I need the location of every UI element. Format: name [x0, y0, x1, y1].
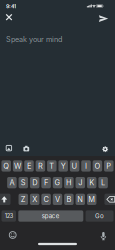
staticText: Go: [95, 212, 104, 220]
button[interactable]: A: [7, 177, 17, 188]
button[interactable]: M: [87, 194, 96, 205]
staticText: G: [54, 178, 60, 187]
staticText: R: [38, 161, 43, 170]
button[interactable]: Close: [4, 12, 14, 22]
button[interactable]: Emoji: [8, 230, 18, 240]
staticText: V: [55, 195, 60, 204]
button[interactable]: F: [41, 177, 51, 188]
button[interactable]: Dictate: [98, 230, 108, 241]
button[interactable]: I: [81, 160, 91, 172]
staticText: T: [49, 161, 54, 170]
button[interactable]: U: [70, 160, 79, 172]
button[interactable]: X: [30, 194, 39, 205]
button[interactable]: Add photo: [4, 144, 13, 153]
button[interactable]: space: [18, 210, 83, 222]
button[interactable]: Settings: [101, 145, 110, 154]
staticText: 9:41: [6, 3, 16, 9]
staticText: X: [32, 195, 37, 204]
button[interactable]: B: [64, 194, 74, 205]
staticText: H: [66, 178, 72, 187]
button[interactable]: Go: [86, 210, 113, 222]
button[interactable]: Y: [58, 160, 68, 172]
button[interactable]: O: [93, 160, 102, 172]
button[interactable]: Send: [98, 14, 110, 24]
button[interactable]: Photo library: [4, 144, 13, 153]
button[interactable]: J: [76, 177, 85, 188]
staticText: E: [27, 161, 31, 170]
button[interactable]: Camera: [22, 144, 31, 153]
staticText: C: [44, 195, 49, 204]
staticText: N: [77, 195, 83, 204]
staticText: I: [85, 161, 87, 170]
button[interactable]: D: [30, 177, 39, 188]
staticText: L: [101, 178, 105, 187]
button[interactable]: Shift: [0, 194, 11, 205]
button[interactable]: H: [64, 177, 74, 188]
button[interactable]: K: [87, 177, 96, 188]
staticText: B: [66, 195, 71, 204]
staticText: 123: [5, 213, 13, 219]
button[interactable]: N: [76, 194, 85, 205]
button[interactable]: S: [18, 177, 28, 188]
staticText: W: [14, 161, 21, 170]
button[interactable]: Delete: [104, 194, 115, 205]
staticText: Z: [21, 195, 26, 204]
staticText: O: [94, 161, 100, 170]
button[interactable]: L: [98, 177, 108, 188]
staticText: F: [44, 178, 48, 187]
button[interactable]: Z: [19, 194, 28, 205]
staticText: A: [9, 178, 14, 187]
button[interactable]: V: [53, 194, 62, 205]
staticText: S: [21, 178, 26, 187]
button[interactable]: R: [36, 160, 45, 172]
staticText: M: [88, 195, 95, 204]
staticText: space: [42, 212, 60, 220]
button[interactable]: P: [104, 160, 114, 172]
staticText: P: [106, 161, 111, 170]
button[interactable]: Q: [1, 160, 11, 172]
button[interactable]: 123: [1, 210, 16, 222]
button[interactable]: T: [47, 160, 57, 172]
staticText: K: [89, 178, 94, 187]
button[interactable]: E: [24, 160, 34, 172]
button[interactable]: C: [41, 194, 51, 205]
button[interactable]: W: [13, 160, 22, 172]
staticText: D: [32, 178, 37, 187]
staticText: Y: [61, 161, 66, 170]
staticText: Speak your mind: [6, 35, 62, 44]
button[interactable]: G: [53, 177, 62, 188]
staticText: J: [78, 178, 82, 187]
staticText: U: [72, 161, 78, 170]
staticText: Q: [3, 161, 9, 170]
